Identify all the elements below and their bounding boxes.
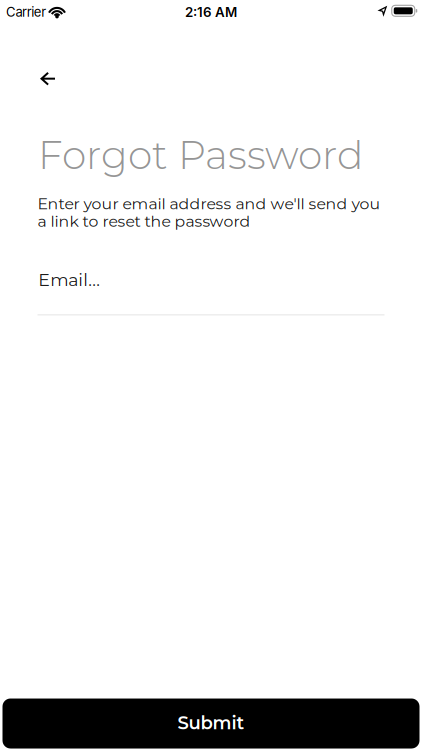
staticText: Email...: [38, 269, 100, 290]
button[interactable]: Email: [37, 269, 384, 315]
staticText: Forgot Password: [38, 131, 363, 179]
button[interactable]: Submit: [2, 698, 419, 748]
staticText: Enter your email address and we'll send …: [37, 194, 380, 213]
staticText: Carrier: [6, 4, 46, 20]
staticText: Submit: [177, 712, 244, 734]
button[interactable]: Back: [30, 62, 65, 95]
staticText: a link to reset the password: [37, 211, 250, 231]
staticText: 2:16 AM: [185, 4, 237, 20]
